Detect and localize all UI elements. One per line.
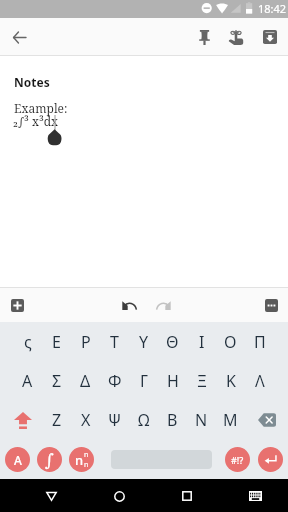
button[interactable]: Pin note (188, 18, 220, 56)
button[interactable]: Backspace (253, 400, 282, 439)
button[interactable]: Π (245, 322, 274, 361)
button[interactable]: Ζ (42, 400, 71, 439)
staticText: ς (24, 331, 32, 353)
staticText: ∫ (45, 450, 54, 470)
button[interactable]: Γ (129, 361, 158, 400)
button[interactable]: Undo (115, 291, 143, 319)
staticText: 18:42 (258, 1, 287, 16)
button[interactable]: Back (36, 481, 66, 511)
button[interactable]: Η (158, 361, 187, 400)
button[interactable]: Enter (258, 447, 283, 472)
button[interactable]: Ε (42, 322, 71, 361)
button[interactable]: Ο (216, 322, 245, 361)
button[interactable]: Exponent (69, 447, 94, 472)
staticText: Β (167, 409, 178, 431)
staticText: Φ (108, 370, 122, 392)
button[interactable]: Χ (71, 400, 100, 439)
staticText: Μ (223, 409, 238, 431)
staticText: ₂∫³ x³dx (13, 113, 59, 129)
staticText: #!? (231, 454, 244, 466)
staticText: Ζ (52, 409, 62, 431)
button[interactable]: Gestures (220, 18, 252, 56)
button[interactable]: Symbols (225, 447, 250, 472)
staticText: Δ (80, 370, 91, 392)
button[interactable]: Ν (187, 400, 216, 439)
staticText: Ω (138, 409, 150, 431)
staticText: Λ (255, 370, 265, 392)
button[interactable]: Ι (187, 322, 216, 361)
button[interactable]: Τ (100, 322, 129, 361)
button[interactable]: Λ (245, 361, 274, 400)
staticText: Π (254, 331, 266, 353)
button[interactable]: Recent apps (172, 481, 202, 511)
button[interactable]: Ω (129, 400, 158, 439)
button[interactable]: Σ (42, 361, 71, 400)
button[interactable]: Home (104, 481, 134, 511)
button[interactable]: Κ (216, 361, 245, 400)
button[interactable]: Ψ (100, 400, 129, 439)
staticText: n (84, 450, 89, 460)
staticText: Notes (14, 74, 50, 90)
button[interactable]: ς (13, 322, 42, 361)
button[interactable]: Θ (158, 322, 187, 361)
staticText: Θ (166, 331, 179, 353)
staticText: Υ (139, 331, 149, 353)
button[interactable]: Ξ (187, 361, 216, 400)
staticText: n (84, 460, 89, 470)
staticText: Κ (226, 370, 236, 392)
button[interactable]: Δ (71, 361, 100, 400)
button[interactable]: Β (158, 400, 187, 439)
button[interactable]: Save (252, 18, 288, 56)
staticText: Ξ (197, 370, 207, 392)
button[interactable]: More options (259, 293, 283, 317)
staticText: Ψ (108, 409, 122, 431)
staticText: Γ (140, 370, 148, 392)
staticText: A (14, 452, 22, 468)
button[interactable]: Φ (100, 361, 129, 400)
button[interactable]: Α (13, 361, 42, 400)
staticText: Η (167, 370, 179, 392)
staticText: Α (22, 370, 33, 392)
button[interactable]: Insert (5, 293, 29, 317)
button[interactable]: Υ (129, 322, 158, 361)
staticText: Τ (110, 331, 119, 353)
button[interactable]: Alphabet (5, 447, 30, 472)
button[interactable]: Ρ (71, 322, 100, 361)
button[interactable]: Shift (8, 400, 37, 439)
staticText: Ρ (81, 331, 91, 353)
staticText: Ι (199, 331, 205, 353)
button[interactable]: Μ (216, 400, 245, 439)
staticText: Σ (52, 370, 62, 392)
button[interactable]: Redo (149, 291, 177, 319)
staticText: n (75, 451, 84, 469)
staticText: Ε (52, 331, 61, 353)
staticText: Ο (224, 331, 237, 353)
button[interactable]: Switch keyboard (240, 481, 270, 511)
button[interactable]: Navigate up (5, 23, 34, 52)
staticText: Example: (14, 100, 68, 116)
button[interactable]: Integral (37, 447, 62, 472)
staticText: Ν (195, 409, 208, 431)
staticText: Χ (81, 409, 91, 431)
